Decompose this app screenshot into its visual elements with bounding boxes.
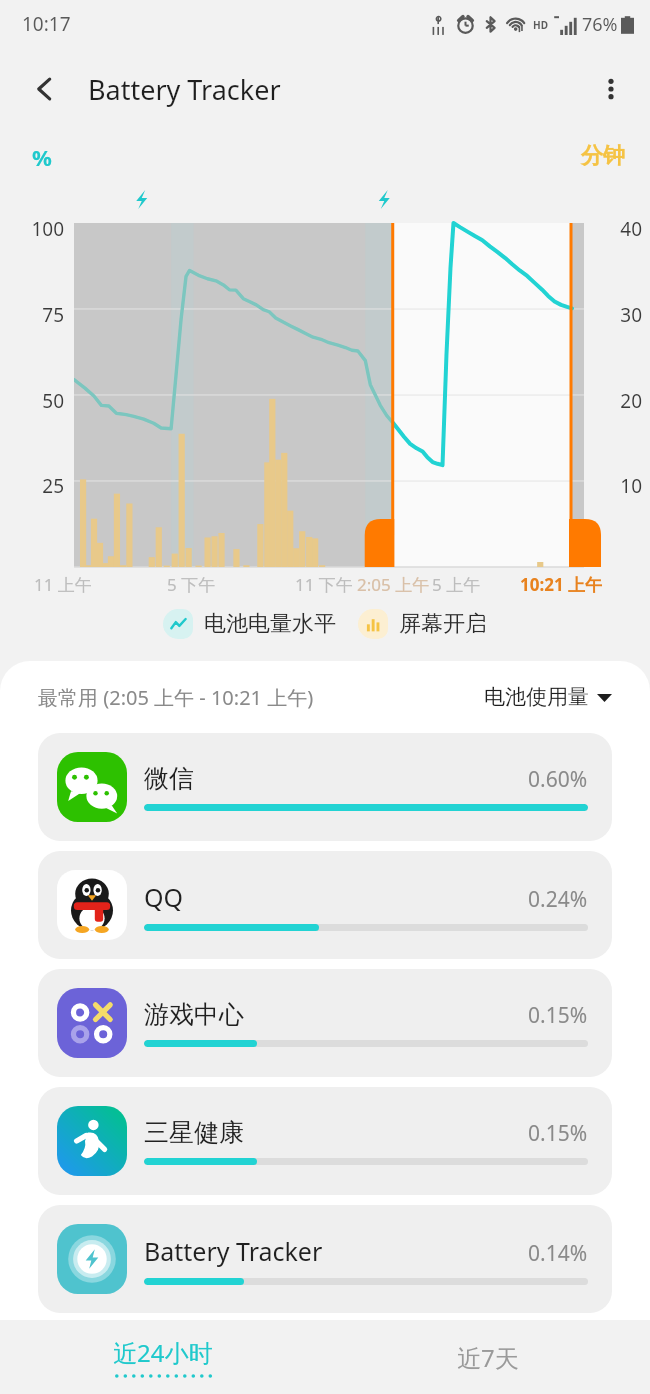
button[interactable]: 近7天 <box>325 1320 650 1394</box>
staticText: 20 <box>598 388 642 414</box>
staticText: 30 <box>598 302 642 328</box>
staticText: 2:05 上午 <box>357 573 430 596</box>
staticText: 75 <box>0 302 64 328</box>
staticText: 最常用 (2:05 上午 - 10:21 上午) <box>38 684 314 711</box>
staticText: 0.15% <box>528 1001 588 1030</box>
staticText: 屏幕开启 <box>399 610 487 638</box>
staticText: 25 <box>0 473 64 499</box>
staticText: 100 <box>0 216 64 242</box>
staticText: 10 <box>598 473 642 499</box>
button[interactable]: 屏幕开启 <box>358 609 487 639</box>
button[interactable]: More options <box>588 66 634 112</box>
staticText: 近7天 <box>457 1341 519 1374</box>
staticText: 0.15% <box>528 1119 588 1148</box>
staticText: 10:17 <box>22 11 71 37</box>
staticText: 10:21 上午 <box>520 573 603 596</box>
staticText: 游戏中心 <box>144 999 244 1030</box>
button[interactable]: QQ <box>38 851 612 959</box>
staticText: Battery Tracker <box>144 1234 323 1268</box>
button[interactable]: 电池电量水平 <box>163 609 336 639</box>
staticText: 电池使用量 <box>484 684 589 710</box>
staticText: 5 上午 <box>432 573 481 596</box>
button[interactable]: Back <box>22 66 68 112</box>
staticText: 0.14% <box>528 1239 588 1268</box>
staticText: 0.24% <box>528 885 588 914</box>
staticText: 电池电量水平 <box>204 610 336 638</box>
staticText: 11 上午 <box>34 573 92 596</box>
button[interactable]: 微信 <box>38 733 612 841</box>
staticText: QQ <box>144 880 184 914</box>
staticText: 分钟 <box>581 142 625 170</box>
button[interactable]: 游戏中心 <box>38 969 612 1077</box>
staticText: Battery Tracker <box>88 71 281 108</box>
staticText: 近24小时 <box>113 1336 213 1369</box>
staticText: 40 <box>598 216 642 242</box>
staticText: HD <box>533 18 548 32</box>
staticText: 0.60% <box>528 765 588 794</box>
staticText: 50 <box>0 388 64 414</box>
button[interactable]: 三星健康 <box>38 1087 612 1195</box>
button[interactable]: Battery Tracker <box>38 1205 612 1313</box>
staticText: 76% <box>582 12 618 37</box>
button[interactable]: 电池使用量 <box>484 684 612 710</box>
staticText: 微信 <box>144 763 194 794</box>
staticText: 三星健康 <box>144 1117 244 1148</box>
button[interactable]: 近24小时 <box>0 1320 325 1394</box>
staticText: % <box>32 142 52 172</box>
staticText: 11 下午 <box>295 573 353 596</box>
staticText: 5 下午 <box>167 573 216 596</box>
